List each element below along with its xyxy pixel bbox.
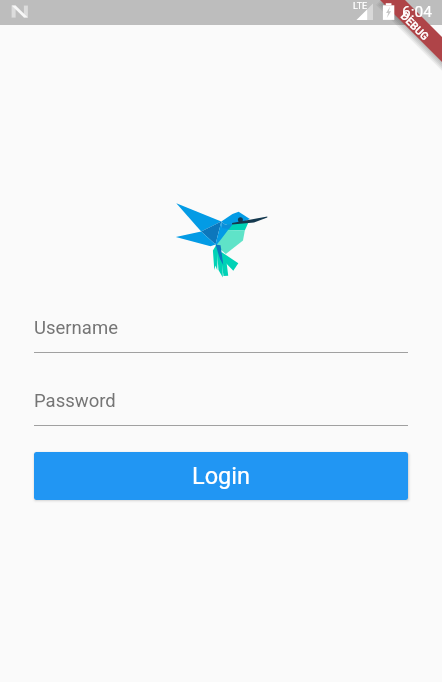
staticText: Password bbox=[34, 390, 116, 412]
button[interactable]: Password bbox=[0, 368, 442, 426]
button[interactable]: Username bbox=[0, 295, 442, 353]
staticText: Username bbox=[34, 317, 118, 339]
staticText: DEBUG bbox=[399, 10, 432, 43]
staticText: Login bbox=[192, 462, 250, 490]
button[interactable]: Login bbox=[34, 452, 408, 500]
staticText: LTE bbox=[353, 1, 368, 12]
staticText: 6:04 bbox=[402, 3, 432, 21]
